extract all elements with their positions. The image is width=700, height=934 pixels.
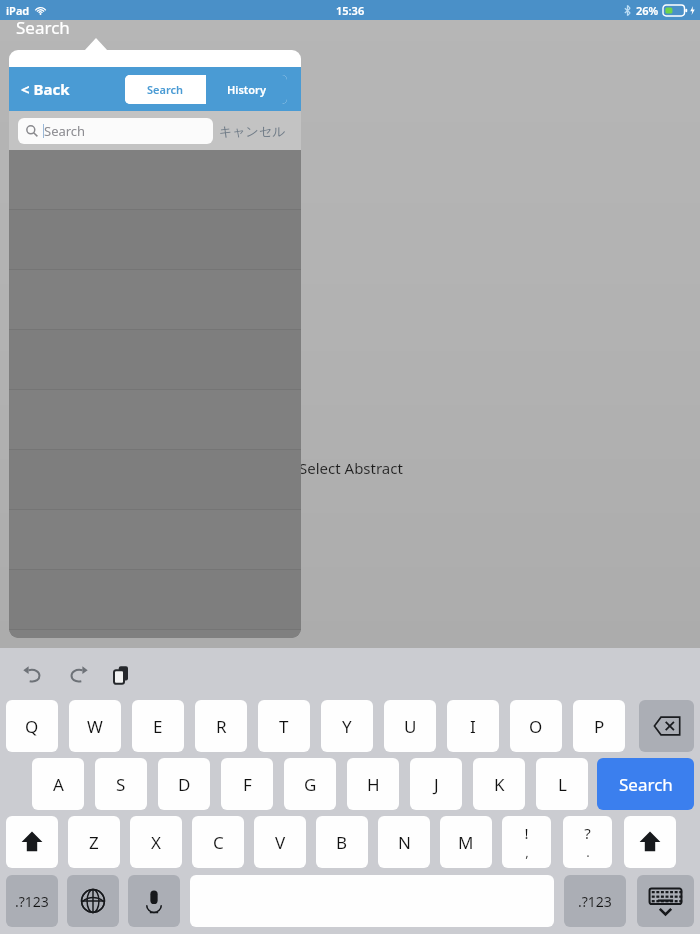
staticText: G [304,773,317,796]
staticText: < Back [21,79,70,99]
button[interactable]: R [195,700,247,752]
button[interactable]: S [95,758,147,810]
staticText: Search [619,773,673,796]
button[interactable]: Y [321,700,373,752]
button[interactable]: Search [18,118,213,144]
staticText: Search [44,122,86,140]
staticText: .?123 [15,892,49,911]
staticText: 15:36 [336,3,365,18]
button[interactable]: V [254,816,306,868]
staticText: 26% [636,3,659,18]
staticText: キャンセル [219,123,286,139]
staticText: History [227,82,266,97]
button[interactable]: D [158,758,210,810]
staticText: L [558,773,567,796]
staticText: .?123 [578,892,612,911]
button[interactable]: Shift [624,816,676,868]
staticText: F [243,773,252,796]
staticText: iPad [6,3,30,18]
button[interactable]: ? [563,816,612,868]
button[interactable] [9,630,301,638]
staticText: Z [89,831,99,854]
staticText: M [458,831,474,854]
button[interactable]: .?123 [6,875,58,927]
button[interactable]: J [410,758,462,810]
button[interactable]: X [130,816,182,868]
staticText: , [525,843,529,861]
button[interactable]: M [440,816,492,868]
button[interactable]: N [378,816,430,868]
staticText: D [178,773,191,796]
staticText: ! [524,823,529,843]
staticText: X [151,831,161,854]
button[interactable]: Hide keyboard [637,875,694,927]
button[interactable]: Backspace [639,700,694,752]
button[interactable]: Undo [18,660,48,690]
button[interactable]: Redo [63,660,93,690]
button[interactable]: B [316,816,368,868]
staticText: K [494,773,505,796]
button[interactable]: T [258,700,310,752]
button[interactable]: Z [68,816,120,868]
button[interactable]: .?123 [564,875,626,927]
staticText: J [434,773,439,796]
staticText: U [404,715,417,738]
button[interactable]: < Back [21,79,70,99]
button[interactable]: Next keyboard [67,875,119,927]
button[interactable]: Search [597,758,694,810]
staticText: W [87,715,103,738]
staticText: P [594,715,605,738]
staticText: Y [342,715,352,738]
button[interactable]: K [473,758,525,810]
button[interactable]: ! [502,816,551,868]
button[interactable]: Search [125,75,206,104]
button[interactable]: Dictation [128,875,180,927]
staticText: S [116,773,126,796]
button[interactable]: Shift [6,816,58,868]
button[interactable]: C [192,816,244,868]
staticText: T [279,715,289,738]
button[interactable]: H [347,758,399,810]
button[interactable]: History [206,75,287,104]
button[interactable]: P [573,700,625,752]
staticText: H [367,773,380,796]
staticText: . [586,843,590,861]
staticText: A [53,773,64,796]
button[interactable]: W [69,700,121,752]
button[interactable]: F [221,758,273,810]
staticText: C [213,831,224,854]
button[interactable]: O [510,700,562,752]
button[interactable]: L [536,758,588,810]
staticText: O [529,715,543,738]
staticText: B [336,831,348,854]
staticText: E [153,715,163,738]
button[interactable]: I [447,700,499,752]
button[interactable]: Q [6,700,58,752]
button[interactable]: A [32,758,84,810]
staticText: Select Abstract [299,458,403,478]
button[interactable]: Paste [107,660,137,690]
staticText: V [275,831,286,854]
staticText: Q [25,715,39,738]
button[interactable]: G [284,758,336,810]
button[interactable]: キャンセル [213,123,292,139]
staticText: R [216,715,227,738]
staticText: N [398,831,411,854]
staticText: Search [147,82,184,97]
button[interactable]: E [132,700,184,752]
button[interactable]: U [384,700,436,752]
staticText: ? [584,823,591,843]
staticText: I [470,715,476,738]
staticText: Search [16,16,70,39]
